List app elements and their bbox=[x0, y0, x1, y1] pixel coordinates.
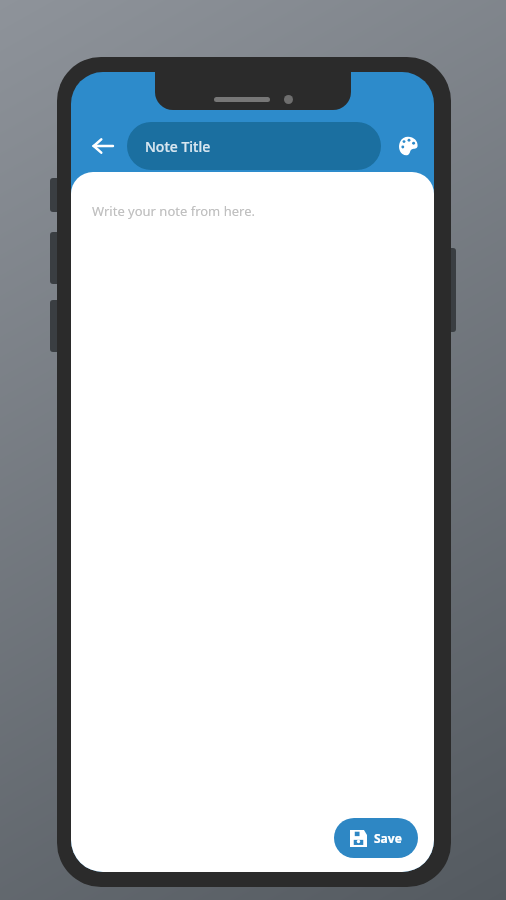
button[interactable]: Note Title bbox=[127, 122, 381, 170]
button[interactable]: Change colour bbox=[391, 129, 425, 163]
staticText: Note Title bbox=[145, 137, 211, 156]
staticText: Save bbox=[374, 830, 402, 846]
button[interactable]: Back bbox=[85, 128, 121, 164]
button[interactable]: Write your note from here. bbox=[92, 202, 255, 220]
button[interactable]: Save bbox=[334, 818, 418, 858]
